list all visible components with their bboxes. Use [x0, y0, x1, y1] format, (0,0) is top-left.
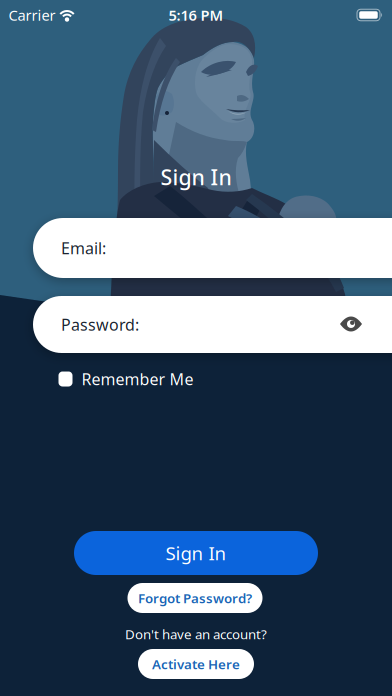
button[interactable]: Password: [33, 296, 392, 353]
button[interactable]: Show password [336, 311, 366, 337]
staticText: Sign In [165, 541, 226, 565]
staticText: Forgot Password? [138, 589, 252, 607]
staticText: Don't have an account? [125, 625, 267, 643]
staticText: Remember Me [81, 368, 193, 390]
staticText: 5:16 PM [168, 5, 223, 25]
staticText: Email: [61, 237, 106, 259]
button[interactable]: Remember Me [58, 368, 193, 390]
staticText: Sign In [160, 163, 231, 191]
button[interactable]: Forgot Password? [127, 583, 262, 613]
button[interactable]: Email: [33, 218, 392, 278]
button[interactable]: Sign In [74, 531, 318, 575]
staticText: Password: [61, 314, 139, 335]
staticText: Activate Here [152, 655, 240, 673]
staticText: Carrier [8, 5, 55, 25]
button[interactable]: Activate Here [138, 649, 254, 679]
